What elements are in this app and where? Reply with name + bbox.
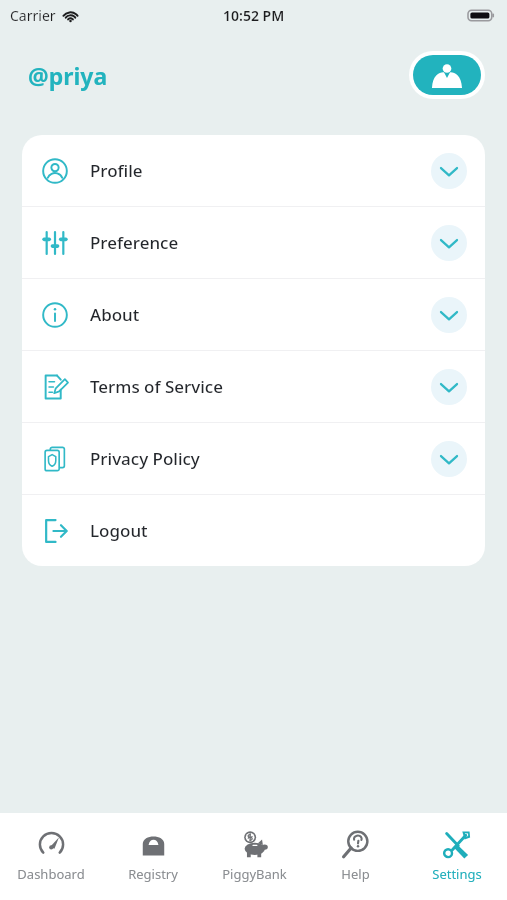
button[interactable]: Expand Privacy Policy [431,441,467,477]
staticText: @priya [28,60,108,91]
staticText: Dashboard [17,865,85,883]
button[interactable]: Help [305,813,406,900]
button[interactable]: Expand Preference [431,225,467,261]
button[interactable]: Terms of Service [22,351,485,422]
button[interactable]: Expand Profile [431,153,467,189]
staticText: 10:52 PM [223,6,285,25]
button[interactable]: Expand About [431,297,467,333]
button[interactable]: Privacy Policy [22,423,485,494]
staticText: About [90,303,140,326]
button[interactable]: Preference [22,207,485,278]
staticText: Settings [432,865,482,883]
button[interactable]: Settings [406,813,507,900]
staticText: Logout [90,519,148,542]
staticText: Preference [90,231,179,254]
button[interactable]: PiggyBank [204,813,305,900]
staticText: Registry [128,865,178,883]
staticText: Terms of Service [90,375,223,398]
staticText: Profile [90,159,143,182]
staticText: Carrier [10,6,56,25]
button[interactable]: Logout [22,495,485,566]
button[interactable]: Dashboard [0,813,102,900]
button[interactable]: Registry [102,813,204,900]
button[interactable]: Profile avatar [413,55,481,95]
button[interactable]: Expand Terms of Service [431,369,467,405]
staticText: Privacy Policy [90,447,200,470]
button[interactable]: About [22,279,485,350]
staticText: Help [341,865,370,883]
button[interactable]: Profile [22,135,485,206]
staticText: PiggyBank [222,865,287,883]
